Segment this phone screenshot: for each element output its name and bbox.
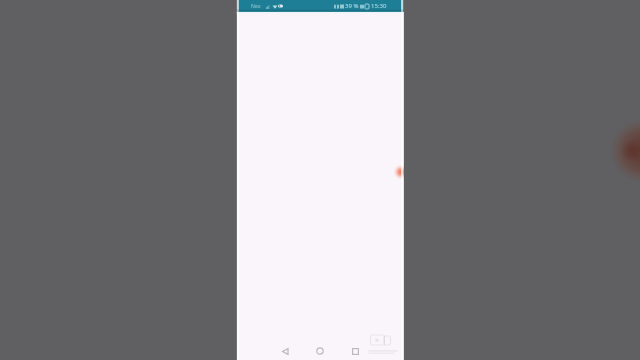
staticText: Neo bbox=[251, 3, 261, 10]
button[interactable]: Home bbox=[311, 342, 329, 360]
staticText: 15:30 bbox=[371, 2, 387, 10]
button[interactable]: Back bbox=[276, 342, 294, 360]
button[interactable]: Add bbox=[393, 164, 404, 180]
staticText: 39 % bbox=[345, 2, 359, 10]
button[interactable]: Recent apps bbox=[346, 342, 364, 360]
